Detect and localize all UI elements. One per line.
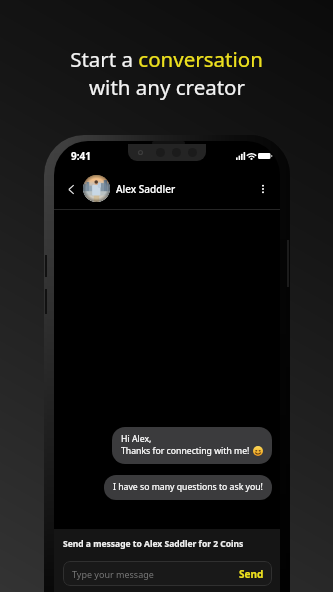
staticText: Send bbox=[239, 567, 264, 581]
button[interactable]: More options bbox=[254, 180, 272, 198]
button[interactable]: Back bbox=[62, 180, 80, 198]
staticText: Send a message to Alex Saddler for 2 Coi… bbox=[63, 538, 244, 550]
staticText: Alex Saddler bbox=[116, 182, 176, 196]
staticText: Type your message bbox=[72, 568, 154, 580]
staticText: 9:41 bbox=[71, 149, 91, 163]
button[interactable]: Type your message bbox=[63, 561, 272, 586]
button[interactable]: Send bbox=[239, 567, 264, 581]
staticText: Hi Alex, bbox=[121, 433, 152, 445]
staticText: Start a conversation bbox=[70, 45, 263, 73]
staticText: I have so many questions to ask you! bbox=[113, 481, 263, 493]
staticText: Thanks for connecting with me! bbox=[121, 445, 250, 457]
staticText: with any creator bbox=[89, 73, 245, 101]
